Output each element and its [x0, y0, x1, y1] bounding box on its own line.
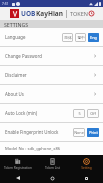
staticText: Disclaimer — [5, 72, 91, 78]
button[interactable]: Auto Lock (min) — [0, 104, 103, 122]
staticText: 5 — [78, 111, 81, 116]
staticText: Enable Fingerprint Unlock — [5, 129, 73, 135]
button[interactable]: Disclaimer — [0, 66, 103, 84]
staticText: KayHian — [36, 9, 63, 18]
button[interactable]: Open — [91, 52, 99, 60]
staticText: TOKEN — [70, 10, 88, 17]
button[interactable]: Eng — [88, 33, 99, 42]
staticText: Change Password — [5, 53, 91, 59]
button[interactable]: Recents — [84, 176, 88, 180]
button[interactable]: Change Password — [0, 47, 103, 65]
staticText: 7:51 — [2, 2, 9, 6]
staticText: Token List — [45, 166, 60, 170]
staticText: Setting — [81, 166, 92, 170]
staticText: 简体 — [64, 35, 72, 40]
button[interactable]: 简体 — [62, 33, 73, 42]
button[interactable]: 繁中 — [75, 33, 86, 42]
staticText: SETTINGS — [4, 21, 29, 28]
staticText: UOB — [21, 9, 36, 18]
button[interactable]: Setting — [69, 157, 103, 171]
staticText: About Us — [5, 91, 91, 97]
button[interactable]: Token List — [35, 157, 69, 171]
button[interactable]: Open — [91, 90, 99, 98]
staticText: Auto Lock (min) — [5, 110, 73, 116]
staticText: Print — [89, 130, 98, 135]
staticText: Language — [5, 34, 62, 40]
staticText: Eng — [90, 35, 97, 40]
staticText: Model No : sdk_gphone_x86 — [5, 146, 61, 152]
button[interactable]: UOB — [0, 7, 103, 20]
button[interactable]: Back — [16, 176, 20, 180]
button[interactable]: Language — [0, 28, 103, 46]
button[interactable]: None — [73, 128, 85, 137]
button[interactable]: Token Registration — [0, 157, 35, 171]
staticText: 繁中 — [77, 35, 85, 40]
staticText: None — [74, 130, 84, 135]
button[interactable]: Open — [91, 71, 99, 79]
button[interactable]: Print — [87, 128, 99, 137]
button[interactable]: About Us — [0, 85, 103, 103]
button[interactable]: Home — [50, 176, 54, 180]
staticText: Token Registration — [4, 166, 32, 170]
button[interactable]: Off — [87, 109, 99, 118]
staticText: Off — [90, 111, 96, 116]
button[interactable]: 5 — [73, 109, 85, 118]
button[interactable]: Enable Fingerprint Unlock — [0, 123, 103, 141]
